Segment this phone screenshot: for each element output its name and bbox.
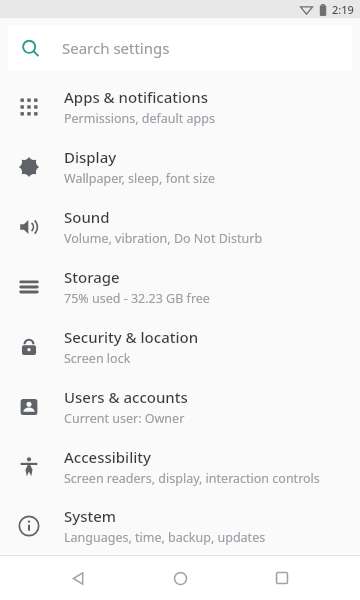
button[interactable]: Back <box>54 556 102 600</box>
button[interactable]: System <box>0 497 360 555</box>
button[interactable]: Sound <box>0 197 360 257</box>
staticText: Display <box>64 147 117 167</box>
button[interactable]: Apps & notifications <box>0 77 360 137</box>
button[interactable]: Home <box>156 556 204 600</box>
staticText: 75% used - 32.23 GB free <box>64 290 210 307</box>
staticText: Permissions, default apps <box>64 110 215 127</box>
button[interactable]: Search settings <box>8 25 352 71</box>
staticText: Screen readers, display, interaction con… <box>64 470 320 487</box>
staticText: System <box>64 506 117 526</box>
button[interactable]: Display <box>0 137 360 197</box>
button[interactable]: Security & location <box>0 317 360 377</box>
button[interactable]: Recent apps <box>258 556 306 600</box>
button[interactable]: Storage <box>0 257 360 317</box>
staticText: Accessibility <box>64 447 151 467</box>
staticText: Current user: Owner <box>64 410 185 427</box>
staticText: 2:19 <box>332 2 354 17</box>
staticText: Languages, time, backup, updates <box>64 529 266 546</box>
button[interactable]: Accessibility <box>0 437 360 497</box>
staticText: Search settings <box>62 38 170 58</box>
staticText: Security & location <box>64 327 199 347</box>
staticText: Screen lock <box>64 350 131 367</box>
staticText: Apps & notifications <box>64 87 208 107</box>
staticText: Volume, vibration, Do Not Disturb <box>64 230 263 247</box>
staticText: Storage <box>64 267 120 287</box>
button[interactable]: Users & accounts <box>0 377 360 437</box>
staticText: Sound <box>64 207 110 227</box>
staticText: Users & accounts <box>64 387 188 407</box>
staticText: Wallpaper, sleep, font size <box>64 170 216 187</box>
